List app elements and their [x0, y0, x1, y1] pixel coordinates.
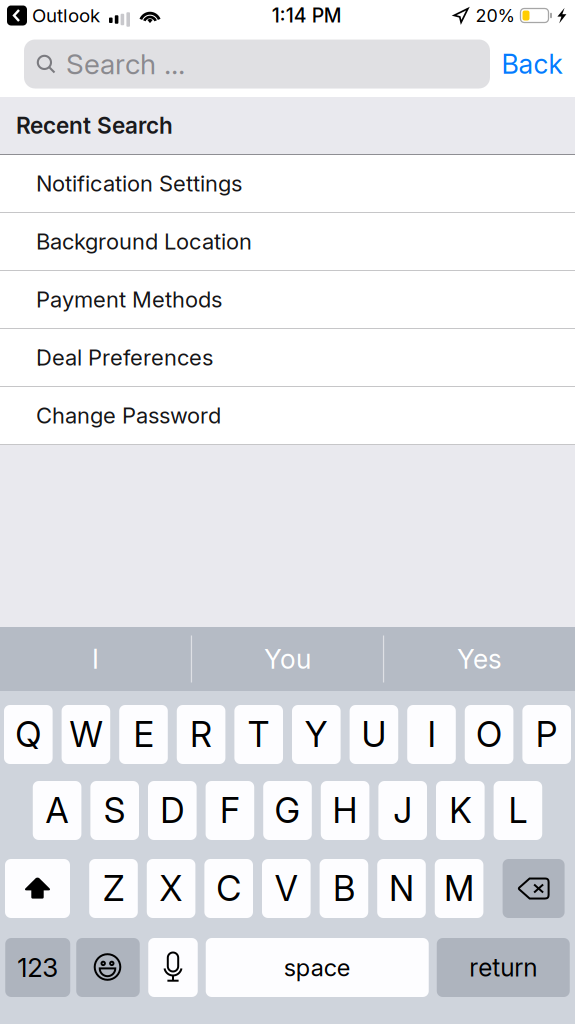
button[interactable]: S: [90, 781, 139, 840]
staticText: C: [216, 867, 241, 909]
staticText: T: [248, 713, 270, 755]
staticText: Q: [15, 713, 41, 755]
staticText: Recent Search: [16, 112, 173, 139]
staticText: O: [476, 713, 502, 755]
staticText: You: [264, 643, 311, 675]
staticText: S: [104, 789, 126, 831]
button[interactable]: Q: [4, 705, 53, 764]
staticText: Back: [501, 48, 562, 80]
button[interactable]: R: [177, 705, 225, 764]
button[interactable]: X: [147, 859, 195, 918]
button[interactable]: Deal Preferences: [0, 329, 575, 387]
button[interactable]: Yes: [384, 627, 575, 691]
button[interactable]: V: [262, 859, 311, 918]
button[interactable]: F: [206, 781, 254, 840]
staticText: 123: [17, 952, 58, 983]
button[interactable]: U: [350, 705, 398, 764]
button[interactable]: You: [192, 627, 383, 691]
button[interactable]: O: [465, 705, 513, 764]
button[interactable]: return: [437, 938, 570, 997]
button[interactable]: C: [204, 859, 253, 918]
button[interactable]: Change Password: [0, 387, 575, 445]
button[interactable]: Z: [89, 859, 138, 918]
staticText: W: [69, 713, 102, 755]
staticText: V: [275, 867, 298, 909]
staticText: B: [333, 867, 355, 909]
button[interactable]: B: [320, 859, 368, 918]
staticText: 1:14 PM: [272, 4, 342, 27]
button[interactable]: Back: [490, 39, 574, 88]
staticText: Search ...: [66, 47, 185, 81]
button[interactable]: 123: [5, 938, 70, 997]
staticText: Deal Preferences: [36, 344, 213, 371]
staticText: P: [536, 713, 558, 755]
button[interactable]: Background Location: [0, 213, 575, 271]
button[interactable]: N: [377, 859, 426, 918]
staticText: I: [427, 713, 435, 755]
button[interactable]: I: [0, 627, 191, 691]
button[interactable]: J: [378, 781, 427, 840]
staticText: M: [444, 867, 474, 909]
button[interactable]: A: [33, 781, 81, 840]
staticText: I: [92, 643, 99, 675]
button[interactable]: D: [148, 781, 197, 840]
button[interactable]: Payment Methods: [0, 271, 575, 329]
button[interactable]: Y: [292, 705, 341, 764]
staticText: Payment Methods: [36, 286, 222, 313]
button[interactable]: G: [263, 781, 312, 840]
staticText: R: [190, 713, 212, 755]
staticText: return: [469, 953, 537, 982]
button[interactable]: Delete: [503, 859, 565, 918]
staticText: space: [284, 953, 351, 982]
staticText: L: [508, 789, 527, 831]
staticText: N: [389, 867, 414, 909]
button[interactable]: L: [494, 781, 542, 840]
staticText: G: [274, 789, 300, 831]
button[interactable]: Emoji: [76, 938, 140, 997]
button[interactable]: I: [407, 705, 456, 764]
button[interactable]: E: [119, 705, 168, 764]
staticText: Outlook: [32, 4, 100, 27]
button[interactable]: Search ...: [24, 39, 490, 88]
staticText: F: [220, 789, 240, 831]
staticText: H: [333, 789, 358, 831]
staticText: Y: [305, 713, 328, 755]
button[interactable]: W: [62, 705, 110, 764]
staticText: Notification Settings: [36, 170, 242, 197]
staticText: J: [393, 789, 412, 831]
staticText: X: [160, 867, 183, 909]
staticText: K: [449, 789, 471, 831]
staticText: E: [133, 713, 153, 755]
staticText: Background Location: [36, 228, 252, 255]
button[interactable]: P: [522, 705, 571, 764]
staticText: U: [361, 713, 386, 755]
staticText: 20%: [475, 5, 515, 26]
staticText: Z: [103, 867, 124, 909]
staticText: A: [46, 789, 69, 831]
button[interactable]: Shift: [5, 859, 70, 918]
button[interactable]: Notification Settings: [0, 155, 575, 213]
staticText: Change Password: [36, 402, 221, 429]
button[interactable]: T: [234, 705, 283, 764]
button[interactable]: M: [435, 859, 483, 918]
staticText: D: [160, 789, 184, 831]
button[interactable]: H: [321, 781, 369, 840]
button[interactable]: space: [206, 938, 429, 997]
staticText: Yes: [457, 643, 502, 675]
button[interactable]: K: [436, 781, 485, 840]
button[interactable]: Dictation: [148, 938, 198, 997]
